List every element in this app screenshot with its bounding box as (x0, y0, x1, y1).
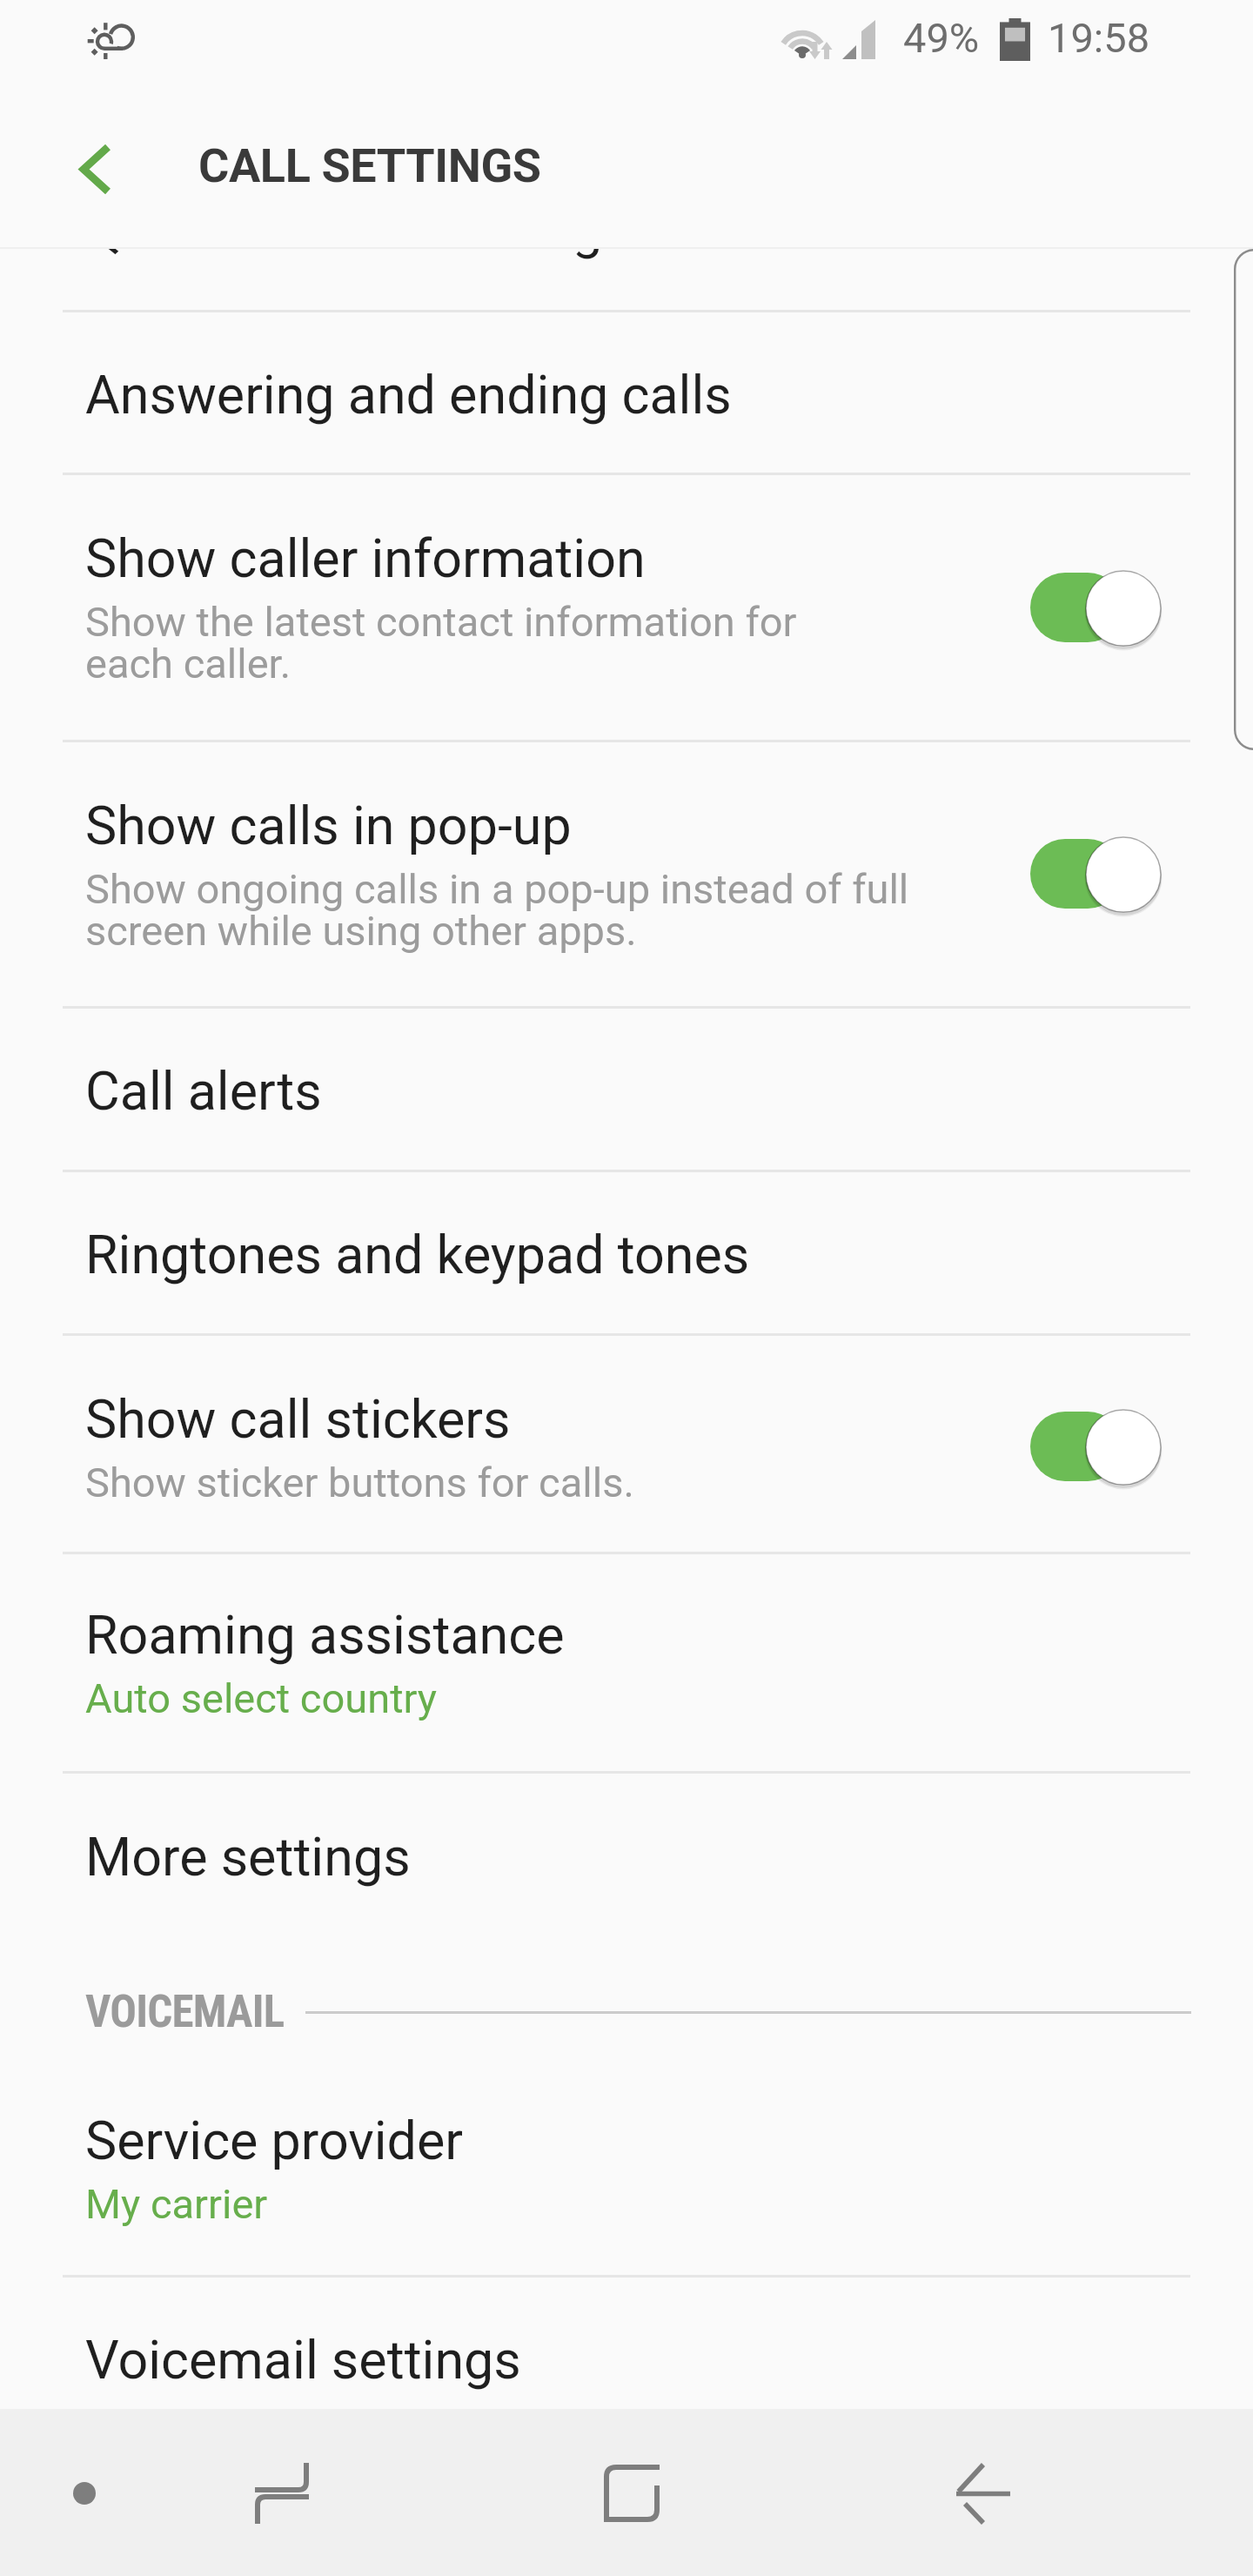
staticText: Show the latest contact information for … (85, 603, 797, 687)
staticText: Auto select country (85, 1680, 438, 1721)
staticText: Show sticker buttons for calls. (85, 1464, 634, 1506)
button[interactable] (0, 473, 1253, 741)
staticText: Show caller information (85, 527, 646, 590)
button[interactable] (0, 2067, 1253, 2276)
staticText: Show ongoing calls in a pop-up instead o… (85, 870, 909, 954)
staticText: VOICEMAIL (85, 1986, 285, 2038)
staticText: Show call stickers (85, 1388, 511, 1451)
staticText: Quick decline messages (85, 248, 658, 261)
button[interactable] (0, 2276, 1253, 2409)
staticText: My carrier (85, 2185, 268, 2227)
staticText: Service provider (85, 2110, 464, 2172)
button[interactable]: Toggle (1013, 1394, 1178, 1499)
staticText: Roaming assistance (85, 1604, 565, 1667)
button[interactable] (0, 1772, 1253, 1937)
staticText: Ringtones and keypad tones (85, 1224, 750, 1286)
button[interactable]: Home (588, 2450, 675, 2537)
staticText: Answering and ending calls (85, 364, 732, 426)
button[interactable] (0, 1553, 1253, 1772)
staticText: Call alerts (85, 1060, 322, 1123)
staticText: Voicemail settings (85, 2329, 521, 2392)
staticText: CALL SETTINGS (198, 138, 541, 193)
button[interactable]: Toggle (1013, 822, 1178, 926)
button[interactable] (0, 1334, 1253, 1553)
button[interactable]: Back (925, 2445, 1042, 2536)
staticText: More settings (85, 1826, 411, 1888)
button[interactable] (0, 741, 1253, 1007)
staticText: 19:58 (1048, 14, 1150, 62)
staticText: Show calls in pop-up (85, 795, 572, 857)
button[interactable]: Recent apps (238, 2450, 325, 2537)
button[interactable]: Toggle (1013, 555, 1178, 660)
button[interactable] (0, 311, 1253, 473)
button[interactable] (0, 1007, 1253, 1171)
staticText: 49% (903, 14, 980, 62)
button[interactable]: Navigate up (37, 92, 152, 242)
button[interactable] (0, 1171, 1253, 1334)
button[interactable]: More options (50, 2459, 119, 2528)
